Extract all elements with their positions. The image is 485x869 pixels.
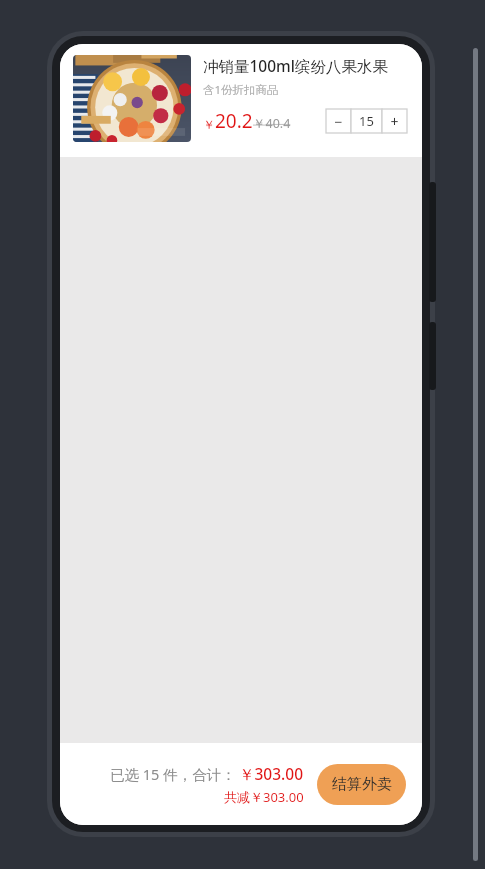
- staticText: 结算外卖: [332, 775, 392, 794]
- staticText: −: [334, 112, 343, 131]
- button[interactable]: 冲销量100ml缤纷八果水果: [60, 44, 422, 157]
- staticText: 冲销量100ml缤纷八果水果: [203, 55, 388, 76]
- staticText: 15: [359, 112, 374, 130]
- staticText: ￥: [203, 117, 215, 132]
- staticText: ￥303.00: [239, 763, 304, 784]
- staticText: 20.2: [215, 108, 253, 134]
- staticText: +: [390, 112, 399, 131]
- staticText: 含1份折扣商品: [203, 82, 279, 98]
- button[interactable]: Decrease quantity: [326, 109, 351, 133]
- button[interactable]: 15: [351, 109, 382, 133]
- staticText: 已选 15 件，合计：: [110, 764, 236, 784]
- staticText: ￥40.4: [253, 115, 291, 132]
- button[interactable]: Increase quantity: [382, 109, 407, 133]
- button[interactable]: 结算外卖: [317, 764, 406, 805]
- staticText: 共减￥303.00: [224, 788, 304, 806]
